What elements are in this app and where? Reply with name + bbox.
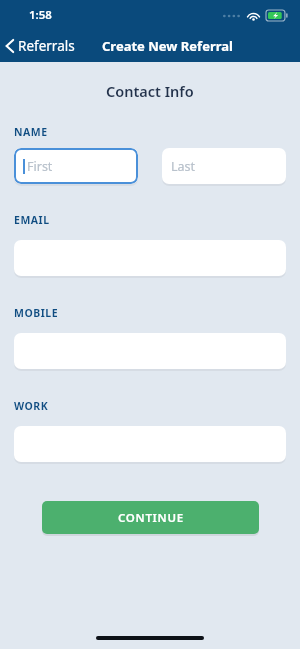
- staticText: NAME: [14, 125, 48, 139]
- staticText: Contact Info: [106, 81, 194, 101]
- staticText: MOBILE: [14, 306, 59, 320]
- button[interactable]: CONTINUE: [42, 501, 259, 534]
- staticText: Last: [171, 158, 196, 175]
- staticText: 1:58: [29, 7, 52, 23]
- button[interactable]: Last: [162, 148, 286, 184]
- staticText: EMAIL: [14, 213, 50, 227]
- staticText: WORK: [14, 399, 49, 413]
- button[interactable]: First: [14, 148, 138, 184]
- staticText: Referrals: [18, 37, 75, 55]
- staticText: First: [27, 158, 53, 175]
- button[interactable]: Referrals: [0, 33, 81, 59]
- staticText: CONTINUE: [118, 510, 184, 526]
- staticText: Create New Referral: [102, 37, 233, 55]
